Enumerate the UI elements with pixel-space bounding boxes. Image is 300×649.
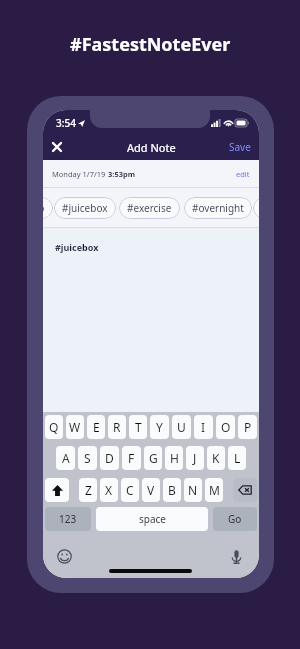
button[interactable]: S [78, 446, 97, 470]
staticText: I [201, 419, 206, 435]
staticText: F [128, 450, 135, 466]
staticText: A [62, 450, 70, 466]
button[interactable]: I [194, 415, 213, 439]
staticText: C [126, 482, 134, 498]
staticText: 123 [59, 512, 77, 526]
button[interactable]: V [142, 478, 160, 502]
staticText: M [209, 482, 220, 498]
button[interactable]: Y [150, 415, 169, 439]
button[interactable]: N [184, 478, 202, 502]
staticText: U [177, 419, 186, 435]
button[interactable]: Shift [45, 478, 69, 502]
button[interactable]: M [205, 478, 223, 502]
staticText: P [244, 419, 252, 435]
staticText: edit [236, 169, 250, 179]
button[interactable]: R [108, 415, 126, 439]
button[interactable]: edit [236, 169, 250, 179]
button[interactable]: W [66, 415, 84, 439]
staticText: G [149, 450, 158, 466]
button[interactable]: A [56, 446, 75, 470]
button[interactable]: L [228, 446, 246, 470]
staticText: #nap [43, 201, 45, 215]
button[interactable]: Emoji keyboard [57, 549, 72, 564]
staticText: 3:54 [56, 116, 76, 130]
staticText: H [170, 450, 179, 466]
staticText: D [105, 450, 114, 466]
button[interactable]: #coffee [253, 197, 259, 219]
button[interactable]: Backspace [233, 478, 257, 502]
staticText: N [188, 482, 198, 498]
button[interactable]: #exercise [119, 197, 180, 219]
staticText: #overnight [192, 201, 244, 215]
button[interactable]: X [100, 478, 118, 502]
button[interactable]: Close [49, 139, 65, 155]
button[interactable]: D [100, 446, 119, 470]
button[interactable]: C [121, 478, 139, 502]
button[interactable]: Go [213, 507, 257, 531]
staticText: T [135, 419, 142, 435]
staticText: L [234, 450, 241, 466]
staticText: K [212, 450, 220, 466]
staticText: Monday 1/7/19 [52, 169, 108, 179]
button[interactable]: 123 [45, 507, 91, 531]
button[interactable]: T [129, 415, 147, 439]
button[interactable]: O [216, 415, 235, 439]
button[interactable]: space [96, 507, 208, 531]
staticText: E [93, 419, 100, 435]
staticText: #exercise [127, 201, 172, 215]
staticText: V [147, 482, 155, 498]
staticText: Save [229, 140, 251, 154]
staticText: Q [49, 419, 59, 435]
button[interactable]: #overnight [184, 197, 252, 219]
button[interactable]: #juicebox [54, 197, 116, 219]
button[interactable]: F [122, 446, 141, 470]
staticText: W [69, 419, 81, 435]
button[interactable]: H [165, 446, 183, 470]
staticText: B [168, 482, 176, 498]
staticText: J [193, 450, 197, 466]
button[interactable]: Q [45, 415, 63, 439]
staticText: 3:53pm [108, 169, 136, 179]
staticText: Z [85, 482, 92, 498]
staticText: #juicebox [55, 241, 99, 253]
button[interactable]: E [87, 415, 105, 439]
button[interactable]: G [144, 446, 162, 470]
staticText: R [113, 419, 121, 435]
staticText: Y [156, 419, 163, 435]
button[interactable]: #nap [43, 197, 53, 219]
button[interactable]: B [163, 478, 181, 502]
button[interactable]: K [207, 446, 225, 470]
staticText: #juicebox [62, 201, 108, 215]
button[interactable]: Save [221, 140, 259, 154]
button[interactable]: Z [79, 478, 97, 502]
staticText: #FastestNoteEver [70, 32, 231, 57]
staticText: Go [228, 512, 242, 526]
staticText: O [221, 419, 231, 435]
staticText: X [105, 482, 113, 498]
button[interactable]: J [186, 446, 204, 470]
button[interactable]: U [172, 415, 191, 439]
staticText: Add Note [127, 140, 176, 155]
button[interactable]: P [238, 415, 257, 439]
button[interactable]: Dictate [229, 549, 244, 564]
staticText: S [84, 450, 91, 466]
staticText: space [139, 512, 166, 526]
